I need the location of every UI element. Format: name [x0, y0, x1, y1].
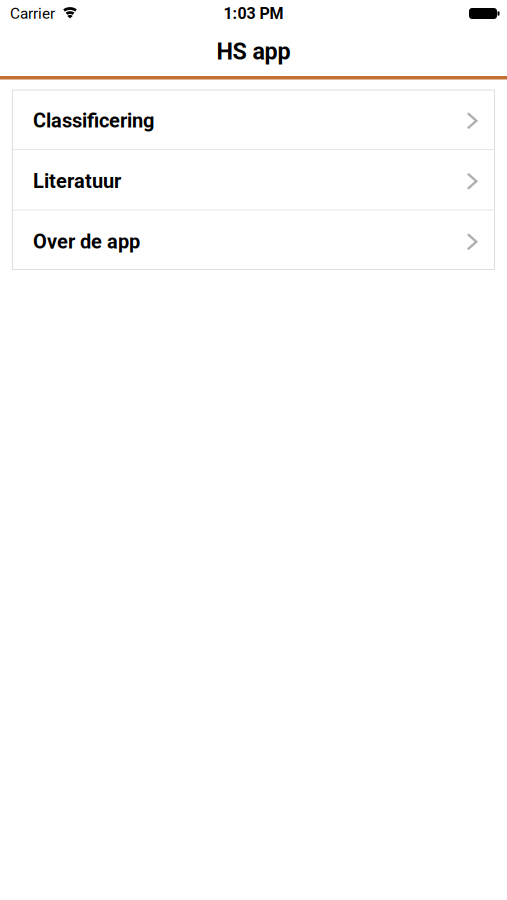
staticText: 1:03 PM	[223, 4, 283, 23]
staticText: Classificering	[33, 109, 154, 132]
staticText: Literatuur	[33, 169, 121, 193]
staticText: HS app	[216, 38, 290, 65]
staticText: Over de app	[33, 230, 140, 253]
button[interactable]: Classificering	[12, 89, 495, 149]
staticText: Carrier	[10, 4, 55, 22]
button[interactable]: Over de app	[12, 210, 495, 270]
button[interactable]: Literatuur	[12, 150, 495, 209]
